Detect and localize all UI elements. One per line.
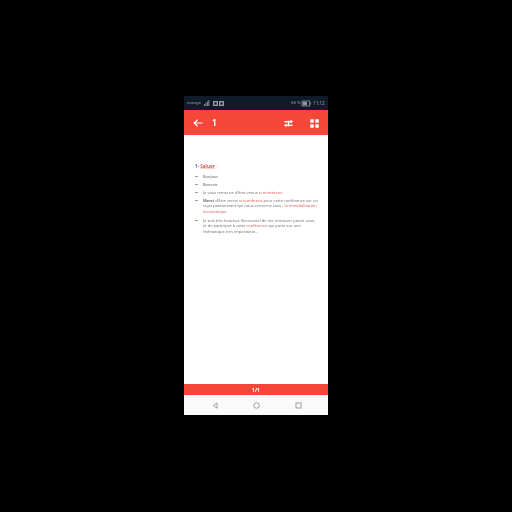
staticText: Bonsoir [203,182,218,187]
staticText: 1- Saluer : [195,163,219,169]
button[interactable]: Recent apps [287,395,309,415]
staticText: Bonjour [203,174,219,179]
button[interactable]: Back [204,395,226,415]
staticText: Je suis très heureux (heureuse) de me re… [203,218,320,235]
staticText: 1/1 [252,386,260,393]
button[interactable]: Sync [278,113,298,133]
staticText: Je vous remercie d'être venus si nombreu… [203,190,283,195]
button[interactable]: Back [188,113,208,133]
staticText: 11:12 [313,100,325,106]
staticText: 68 % [291,100,301,106]
button[interactable]: 1/1 [184,384,328,395]
staticText: Merci d'être venus si nombreux pour cett… [203,198,320,215]
button[interactable]: Home [245,395,267,415]
staticText: orange [187,100,202,106]
button[interactable]: Grid view [304,113,324,133]
staticText: 1 [212,117,217,129]
